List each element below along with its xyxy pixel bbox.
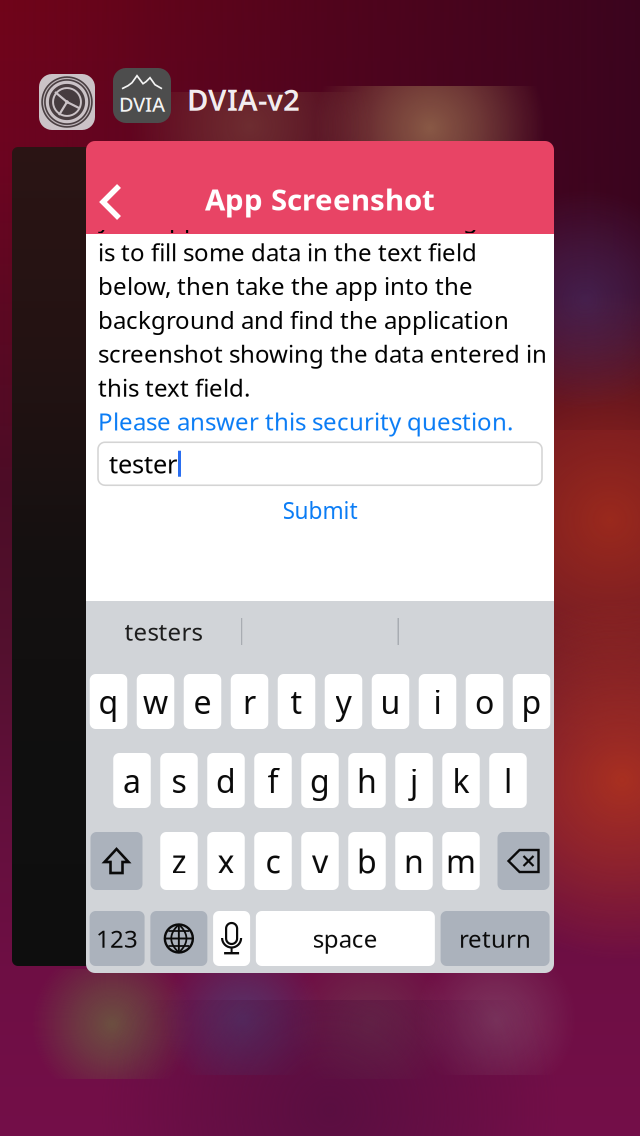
button[interactable]: k (442, 753, 480, 808)
button[interactable]: m (442, 832, 480, 890)
staticText: k (452, 759, 469, 802)
staticText: d (216, 759, 236, 802)
staticText: return (459, 923, 531, 954)
staticText: e (193, 680, 211, 723)
button[interactable]: n (395, 832, 433, 890)
staticText: background and find the application (98, 304, 509, 336)
staticText: App Screenshot (205, 179, 435, 218)
button[interactable]: g (301, 753, 339, 808)
button[interactable]: Dictate (213, 911, 250, 966)
button[interactable]: l (489, 753, 527, 808)
staticText: l (504, 759, 512, 802)
staticText: g (310, 759, 330, 802)
staticText: f (267, 759, 278, 802)
staticText: u (380, 680, 400, 723)
button[interactable]: z (160, 832, 198, 890)
button[interactable]: r (231, 674, 268, 729)
button[interactable]: 123 (90, 911, 145, 966)
staticText: j (410, 759, 418, 802)
button[interactable]: c (254, 832, 292, 890)
staticText: z (171, 840, 186, 882)
button[interactable]: Shift (90, 832, 142, 890)
button[interactable]: a (113, 753, 151, 808)
button[interactable]: i (419, 674, 456, 729)
staticText: h (357, 759, 377, 802)
button[interactable]: Submit (98, 487, 542, 533)
staticText: n (404, 840, 424, 882)
staticText: y (335, 680, 351, 723)
staticText: is to fill some data in the text field (98, 236, 477, 268)
staticText: x (217, 840, 234, 882)
staticText: w (143, 680, 168, 723)
staticText: tester (109, 447, 177, 480)
staticText: Please answer this security question. (98, 405, 513, 437)
button[interactable]: testers (86, 609, 241, 654)
staticText: q (98, 680, 118, 723)
button[interactable]: v (301, 832, 339, 890)
staticText: testers (124, 616, 202, 647)
button[interactable]: return (441, 911, 550, 966)
button[interactable]: Delete (497, 832, 549, 890)
button[interactable]: q (90, 674, 127, 729)
staticText: i (433, 680, 441, 723)
staticText: DVIA-v2 (187, 80, 300, 119)
staticText: r (243, 680, 256, 723)
staticText: s (171, 759, 186, 802)
staticText: screenshot showing the data entered in (98, 338, 547, 369)
staticText: p (521, 680, 541, 723)
button[interactable]: h (348, 753, 386, 808)
button[interactable]: space (256, 911, 435, 966)
button[interactable]: Back (92, 182, 130, 222)
button[interactable]: o (466, 674, 503, 729)
button[interactable]: p (513, 674, 550, 729)
staticText: t (290, 680, 302, 723)
button[interactable]: w (137, 674, 174, 729)
button[interactable]: Next keyboard (150, 911, 207, 966)
staticText: 123 (96, 923, 138, 954)
button[interactable]: f (254, 753, 292, 808)
staticText: this text field. (98, 371, 250, 403)
button[interactable]: s (160, 753, 198, 808)
staticText: a (123, 759, 141, 802)
button[interactable]: b (348, 832, 386, 890)
staticText: DVIA (119, 91, 165, 117)
staticText: space (313, 923, 378, 954)
button[interactable]: e (184, 674, 221, 729)
staticText: v (312, 840, 328, 882)
button[interactable]: j (395, 753, 433, 808)
staticText: your app. The aim of this challenge (98, 202, 492, 234)
staticText: m (446, 840, 476, 882)
staticText: below, then take the app into the (98, 270, 473, 302)
button[interactable]: x (207, 832, 245, 890)
button[interactable]: y (325, 674, 362, 729)
button[interactable]: t (278, 674, 315, 729)
staticText: Submit (282, 495, 357, 525)
button[interactable]: d (207, 753, 245, 808)
button[interactable]: u (372, 674, 409, 729)
staticText: c (265, 840, 280, 882)
staticText: b (357, 840, 377, 882)
staticText: o (475, 680, 494, 723)
